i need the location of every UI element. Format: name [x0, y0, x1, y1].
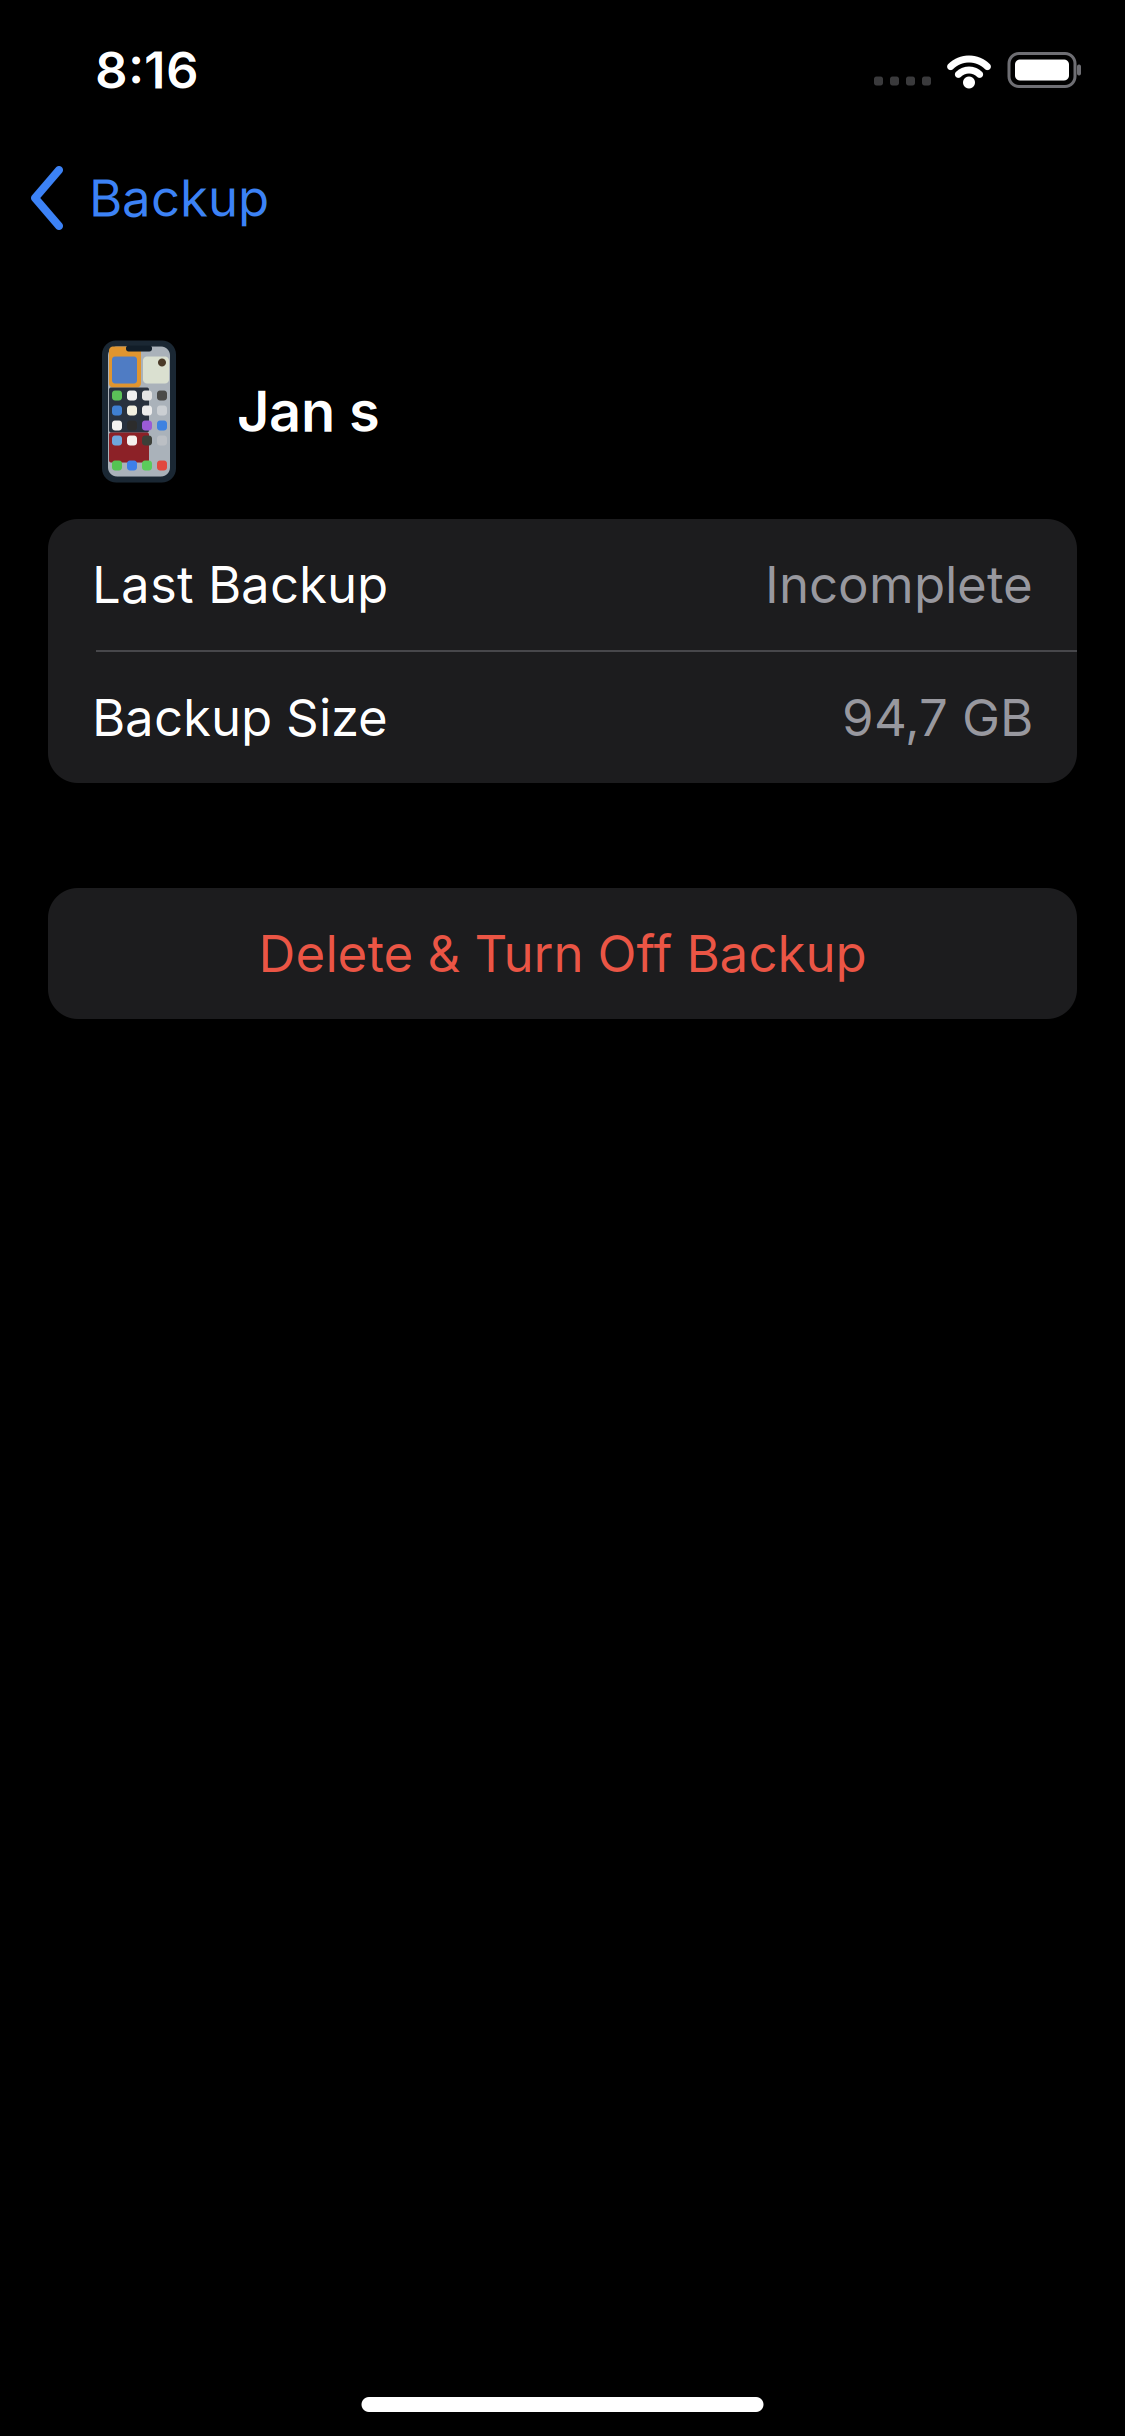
- staticText: Backup Size: [92, 687, 388, 748]
- staticText: Last Backup: [92, 554, 388, 615]
- button[interactable]: Back: [0, 167, 269, 229]
- button[interactable]: Delete & Turn Off Backup: [48, 888, 1077, 1019]
- staticText: 94,7 GB: [842, 687, 1033, 748]
- staticText: 8:16: [95, 39, 199, 101]
- staticText: Incomplete: [765, 554, 1033, 615]
- staticText: Backup: [89, 167, 269, 229]
- staticText: Delete & Turn Off Backup: [258, 923, 866, 984]
- staticText: Jan s: [237, 378, 380, 445]
